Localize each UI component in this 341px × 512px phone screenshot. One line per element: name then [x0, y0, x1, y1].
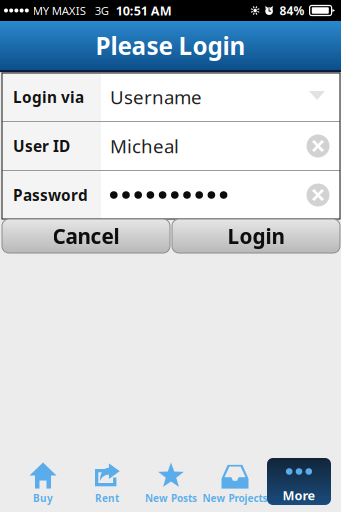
- staticText: 3G: [95, 3, 109, 18]
- staticText: 84%: [280, 2, 305, 19]
- staticText: More: [282, 487, 315, 504]
- staticText: Login via: [13, 87, 84, 107]
- staticText: Login: [227, 222, 284, 250]
- staticText: Password: [13, 185, 88, 205]
- staticText: MY MAXIS: [33, 3, 86, 18]
- button[interactable]: New Posts: [139, 458, 203, 505]
- staticText: Username: [110, 84, 202, 110]
- staticText: 10:51 AM: [116, 2, 172, 19]
- button[interactable]: Rent: [75, 458, 139, 505]
- button[interactable]: Clear text: [305, 125, 333, 167]
- button[interactable]: Buy: [11, 458, 75, 505]
- staticText: Rent: [95, 491, 119, 505]
- button[interactable]: Cancel: [2, 219, 170, 253]
- staticText: Please Login: [95, 29, 245, 62]
- staticText: Micheal: [110, 133, 179, 159]
- button[interactable]: Clear text: [305, 174, 333, 216]
- staticText: User ID: [13, 136, 70, 156]
- staticText: Cancel: [52, 222, 119, 250]
- button[interactable]: More: [267, 458, 331, 505]
- button[interactable]: New Projects: [203, 458, 267, 505]
- button[interactable]: Login: [172, 219, 340, 253]
- staticText: Buy: [33, 491, 53, 505]
- staticText: New Projects: [202, 491, 267, 505]
- staticText: New Posts: [145, 491, 197, 505]
